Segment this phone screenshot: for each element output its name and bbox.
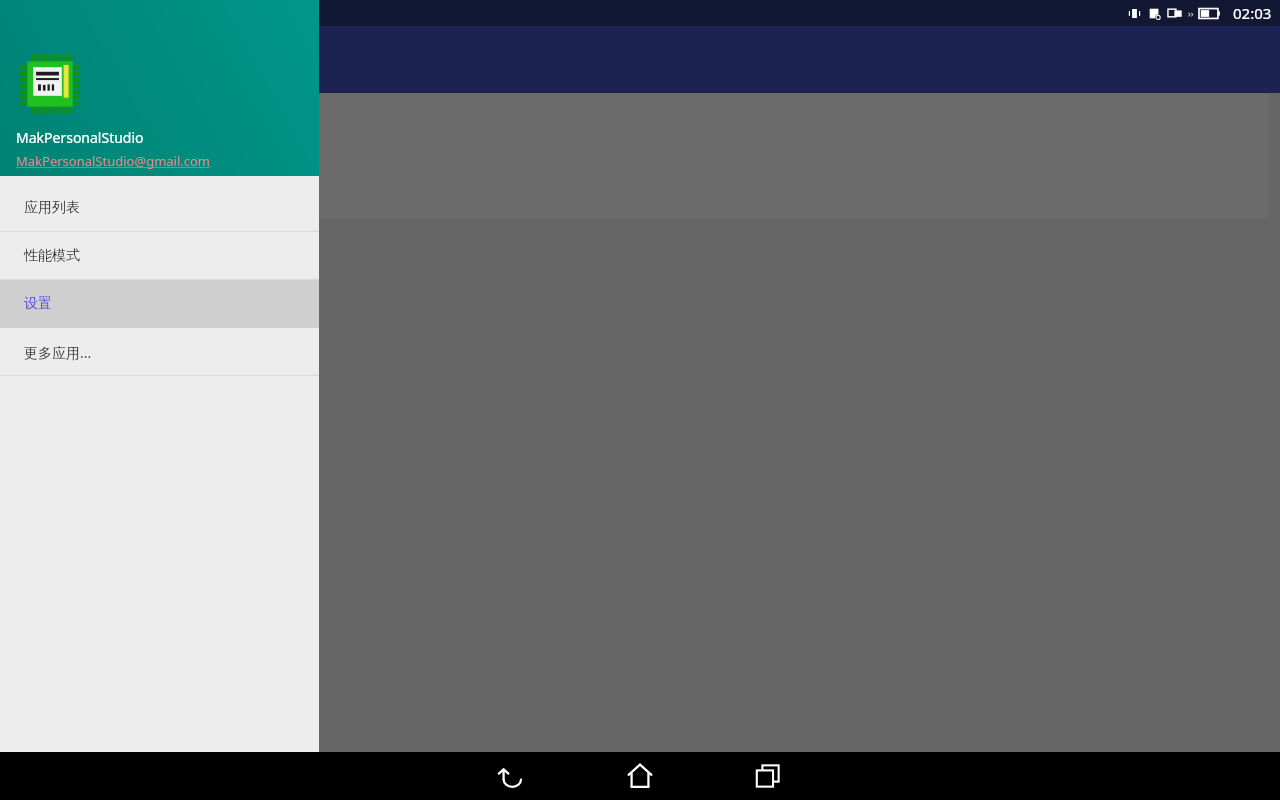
- button[interactable]: 应用列表: [0, 184, 319, 232]
- staticText: MakPersonalStudio@gmail.com: [16, 152, 211, 170]
- button[interactable]: MakPersonalStudio: [0, 0, 319, 176]
- button[interactable]: Recent apps: [704, 752, 832, 800]
- staticText: ››: [1188, 7, 1194, 19]
- button[interactable]: 更多应用...: [0, 328, 319, 376]
- button[interactable]: Back: [448, 752, 576, 800]
- staticText: 应用列表: [24, 199, 80, 217]
- button[interactable]: Home: [576, 752, 704, 800]
- button[interactable]: 性能模式: [0, 232, 319, 280]
- staticText: 设置: [24, 295, 52, 313]
- staticText: 性能模式: [24, 247, 80, 265]
- staticText: MakPersonalStudio: [16, 128, 144, 147]
- button[interactable]: 设置: [0, 280, 319, 328]
- staticText: 02:03: [1233, 3, 1272, 23]
- staticText: 更多应用...: [24, 343, 92, 362]
- button[interactable]: [4, 93, 1268, 218]
